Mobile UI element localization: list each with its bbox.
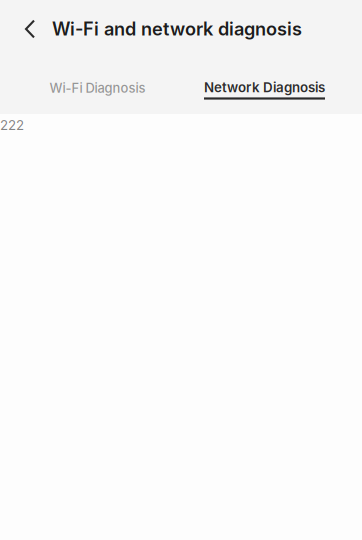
- button[interactable]: Back: [0, 6, 45, 52]
- staticText: Wi-Fi Diagnosis: [49, 80, 145, 96]
- staticText: Network Diagnosis: [204, 79, 325, 95]
- staticText: 222: [0, 117, 24, 133]
- button[interactable]: Network Diagnosis: [181, 58, 348, 114]
- staticText: Wi-Fi and network diagnosis: [52, 18, 302, 40]
- button[interactable]: Wi-Fi Diagnosis: [14, 58, 181, 114]
